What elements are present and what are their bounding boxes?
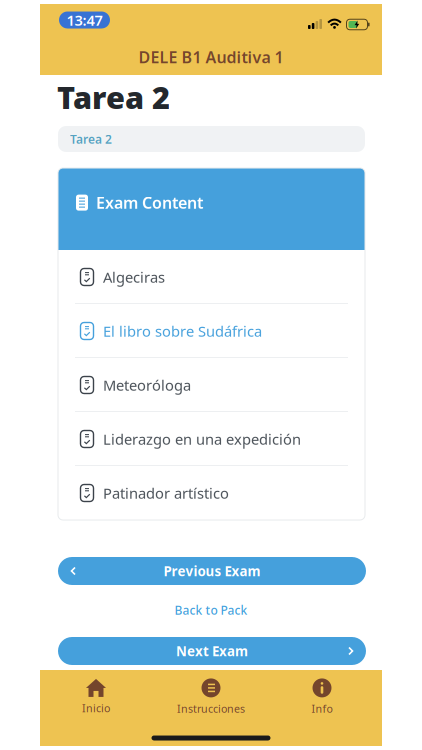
button[interactable]: Info [277,675,367,719]
staticText: Back to Pack [174,602,247,618]
staticText: Instrucciones [177,701,245,716]
staticText: 13:47 [66,10,102,30]
button[interactable]: El libro sobre Sudáfrica [58,304,365,358]
staticText: Exam Content [96,192,203,213]
staticText: Algeciras [103,267,165,287]
button[interactable]: Algeciras [58,250,365,304]
staticText: Inicio [82,701,110,715]
button[interactable]: Inicio [51,675,141,719]
staticText: Tarea 2 [70,131,112,147]
staticText: Liderazgo en una expedición [103,429,301,449]
staticText: Meteoróloga [103,375,191,395]
button[interactable]: Next Exam [58,637,366,665]
button[interactable]: Liderazgo en una expedición [58,412,365,466]
staticText: Patinador artístico [103,483,229,503]
button[interactable]: Meteoróloga [58,358,365,412]
button[interactable]: Back to Pack [174,602,247,618]
button[interactable]: Patinador artístico [58,466,365,520]
button[interactable]: Instrucciones [161,675,261,719]
staticText: Previous Exam [163,562,260,580]
button[interactable]: Previous Exam [58,557,366,585]
staticText: El libro sobre Sudáfrica [103,321,262,341]
staticText: DELE B1 Auditiva 1 [138,46,283,68]
button[interactable]: Tarea 2 [58,126,365,152]
staticText: Next Exam [176,642,248,660]
staticText: Tarea 2 [57,77,170,117]
staticText: Info [311,701,332,716]
